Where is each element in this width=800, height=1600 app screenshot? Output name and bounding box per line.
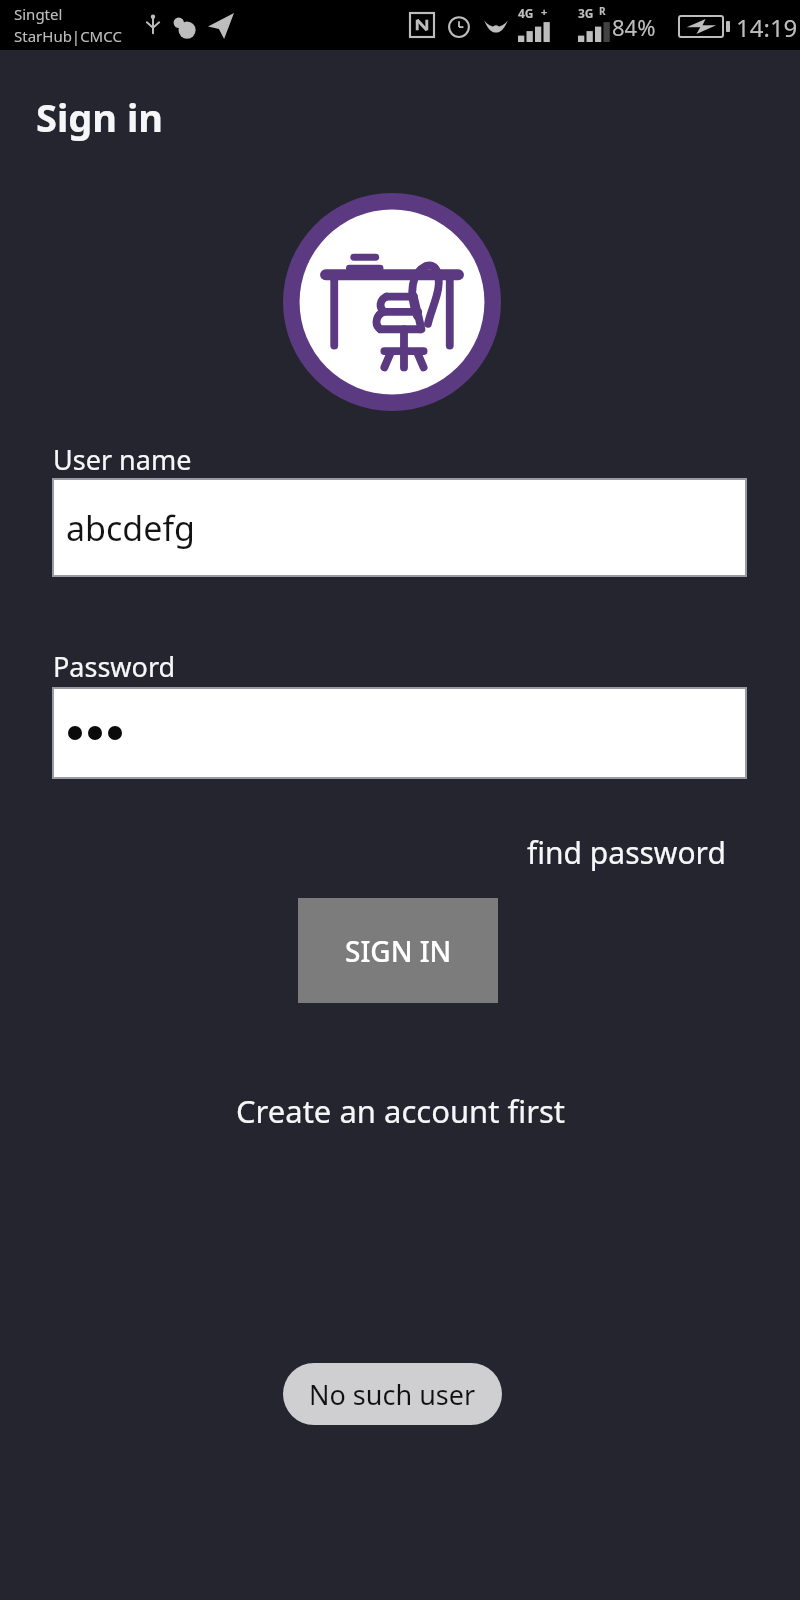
button[interactable] [52,687,747,779]
staticText: StarHub|CMCC [14,26,122,46]
staticText: find password [527,832,726,873]
staticText: 84% [612,12,656,42]
button[interactable]: SIGN IN [298,898,498,1003]
staticText: abcdefg [66,505,195,551]
staticText: R [599,4,606,18]
staticText: Create an account first [236,1090,565,1132]
staticText: Password [53,648,176,685]
staticText: 3G [578,5,594,21]
button[interactable]: abcdefg [52,478,747,577]
button[interactable]: Create an account first [226,1084,575,1138]
staticText: 4G [518,5,534,21]
staticText: + [541,4,548,19]
button[interactable]: find password [521,826,732,879]
staticText: User name [53,441,192,478]
other: App logo [283,193,501,411]
staticText: Sign in [36,91,163,143]
staticText: 14:19 [736,11,798,44]
staticText: No such user [309,1376,476,1413]
staticText: Singtel [14,4,63,24]
staticText: SIGN IN [345,932,452,970]
